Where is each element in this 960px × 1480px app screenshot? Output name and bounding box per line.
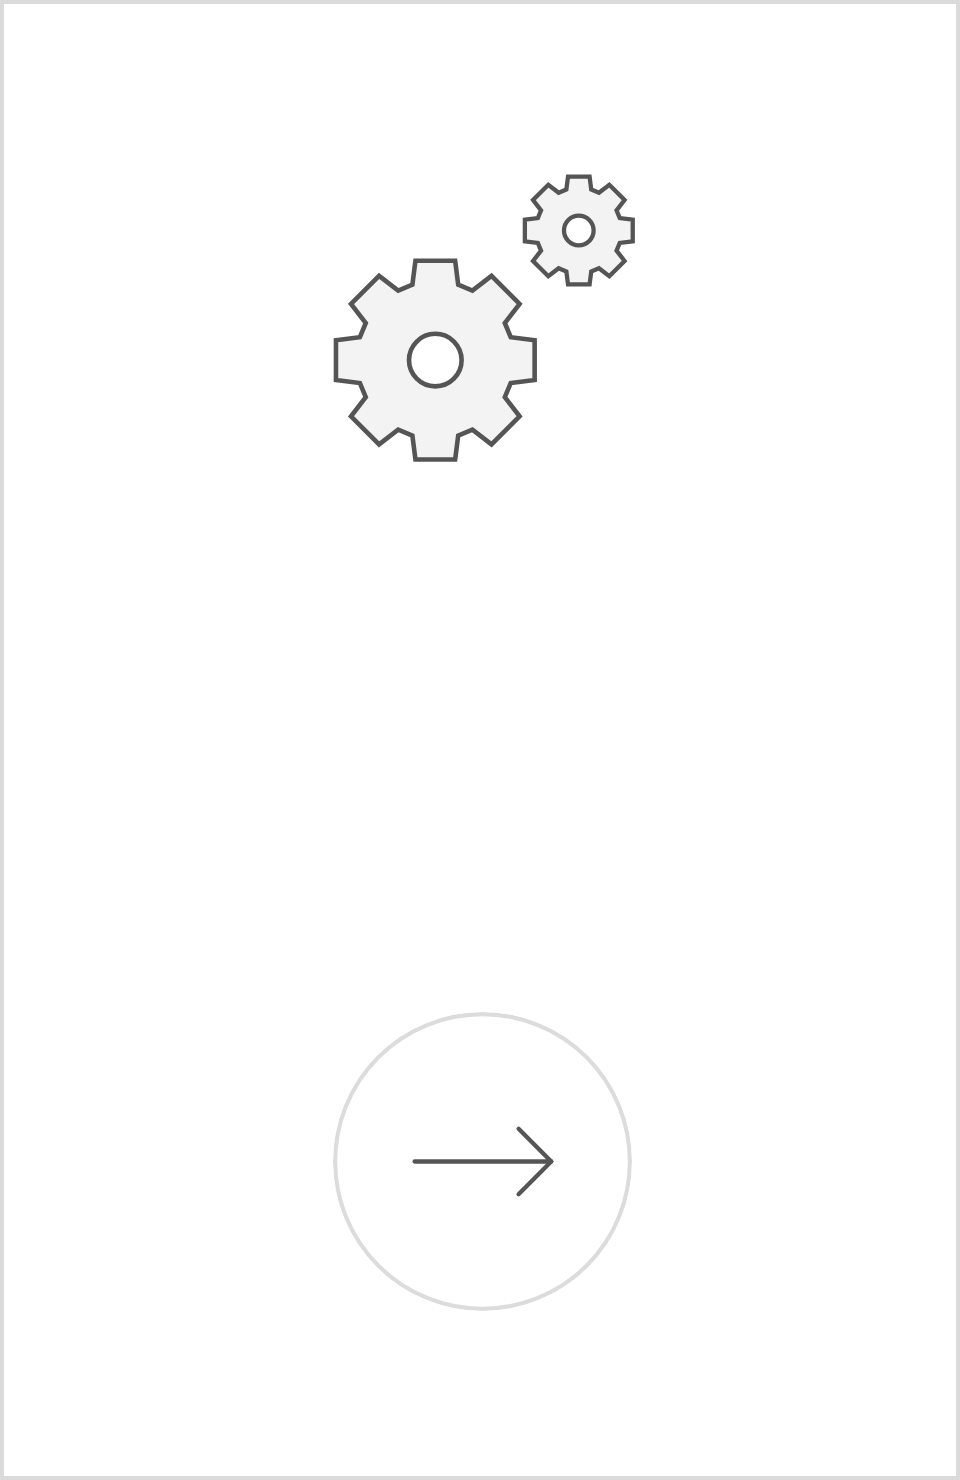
button[interactable]: Next [333, 1012, 632, 1311]
other: Settings illustration [334, 174, 637, 487]
